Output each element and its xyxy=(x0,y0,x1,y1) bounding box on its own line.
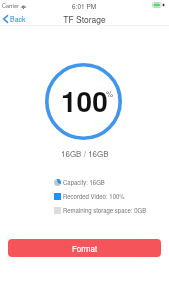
staticText: 16GB / 16GB xyxy=(61,148,109,159)
staticText: Carrier xyxy=(2,2,19,10)
staticText: Remaining storage space: 0GB xyxy=(63,206,147,215)
staticText: Capacity: 16GB xyxy=(63,178,105,187)
staticText: Back xyxy=(10,14,26,24)
staticText: Format xyxy=(72,243,98,254)
staticText: Recorded Video: 100% xyxy=(63,192,125,201)
button[interactable]: Back xyxy=(3,14,26,24)
staticText: 100 xyxy=(61,80,108,120)
staticText: % xyxy=(106,88,114,99)
staticText: TF Storage xyxy=(63,13,106,25)
button[interactable]: Format xyxy=(8,239,161,257)
staticText: 6:01 PM xyxy=(72,2,97,11)
